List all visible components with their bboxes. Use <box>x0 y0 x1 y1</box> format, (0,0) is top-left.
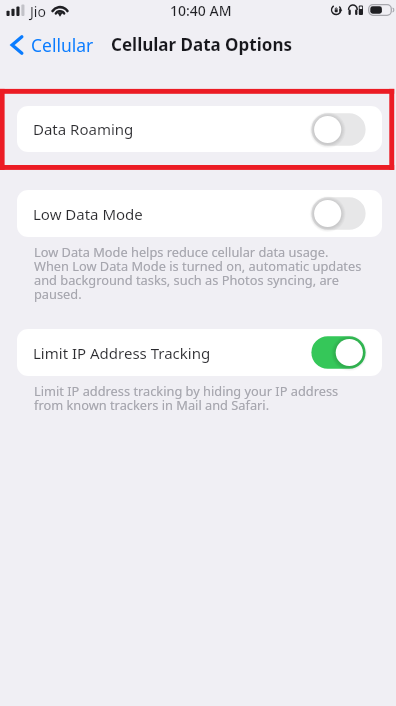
staticText: Cellular Data Options <box>111 33 292 56</box>
staticText: Limit IP Address Tracking <box>33 343 211 363</box>
button[interactable]: Low Data Mode <box>17 190 382 237</box>
button[interactable]: Limit IP Address Tracking <box>17 329 382 376</box>
button[interactable]: Off <box>310 195 367 232</box>
button[interactable]: Off <box>310 111 367 148</box>
staticText: Data Roaming <box>33 119 134 139</box>
staticText: Cellular <box>31 33 94 57</box>
staticText: Limit IP address tracking by hiding your… <box>34 382 339 414</box>
staticText: Jio <box>30 2 46 21</box>
button[interactable]: Cellular <box>6 30 100 60</box>
staticText: 10:40 AM <box>170 1 232 20</box>
staticText: Low Data Mode helps reduce cellular data… <box>34 243 362 303</box>
button[interactable]: On <box>310 334 367 371</box>
staticText: Low Data Mode <box>33 204 143 224</box>
button[interactable]: Data Roaming <box>17 106 382 152</box>
